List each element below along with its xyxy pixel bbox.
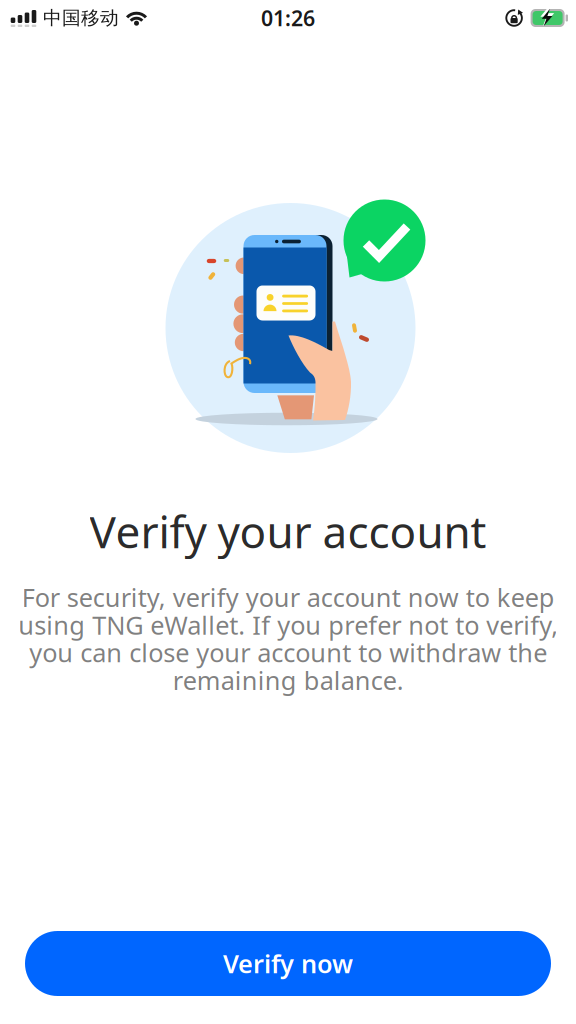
staticText: 中国移动 (43, 6, 119, 29)
button[interactable]: Verify now (25, 931, 551, 996)
staticText: Verify your account (89, 502, 486, 560)
staticText: 01:26 (261, 4, 315, 32)
staticText: For security, verify your account now to… (18, 580, 558, 697)
staticText: Verify now (223, 947, 353, 980)
